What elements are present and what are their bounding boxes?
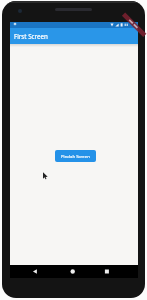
button[interactable] xyxy=(95,265,138,278)
staticText: Pindah Screen xyxy=(61,153,90,159)
staticText: First Screen xyxy=(14,32,48,40)
button[interactable]: Pindah Screen xyxy=(55,150,96,162)
button[interactable] xyxy=(52,265,95,278)
button[interactable] xyxy=(10,265,52,278)
